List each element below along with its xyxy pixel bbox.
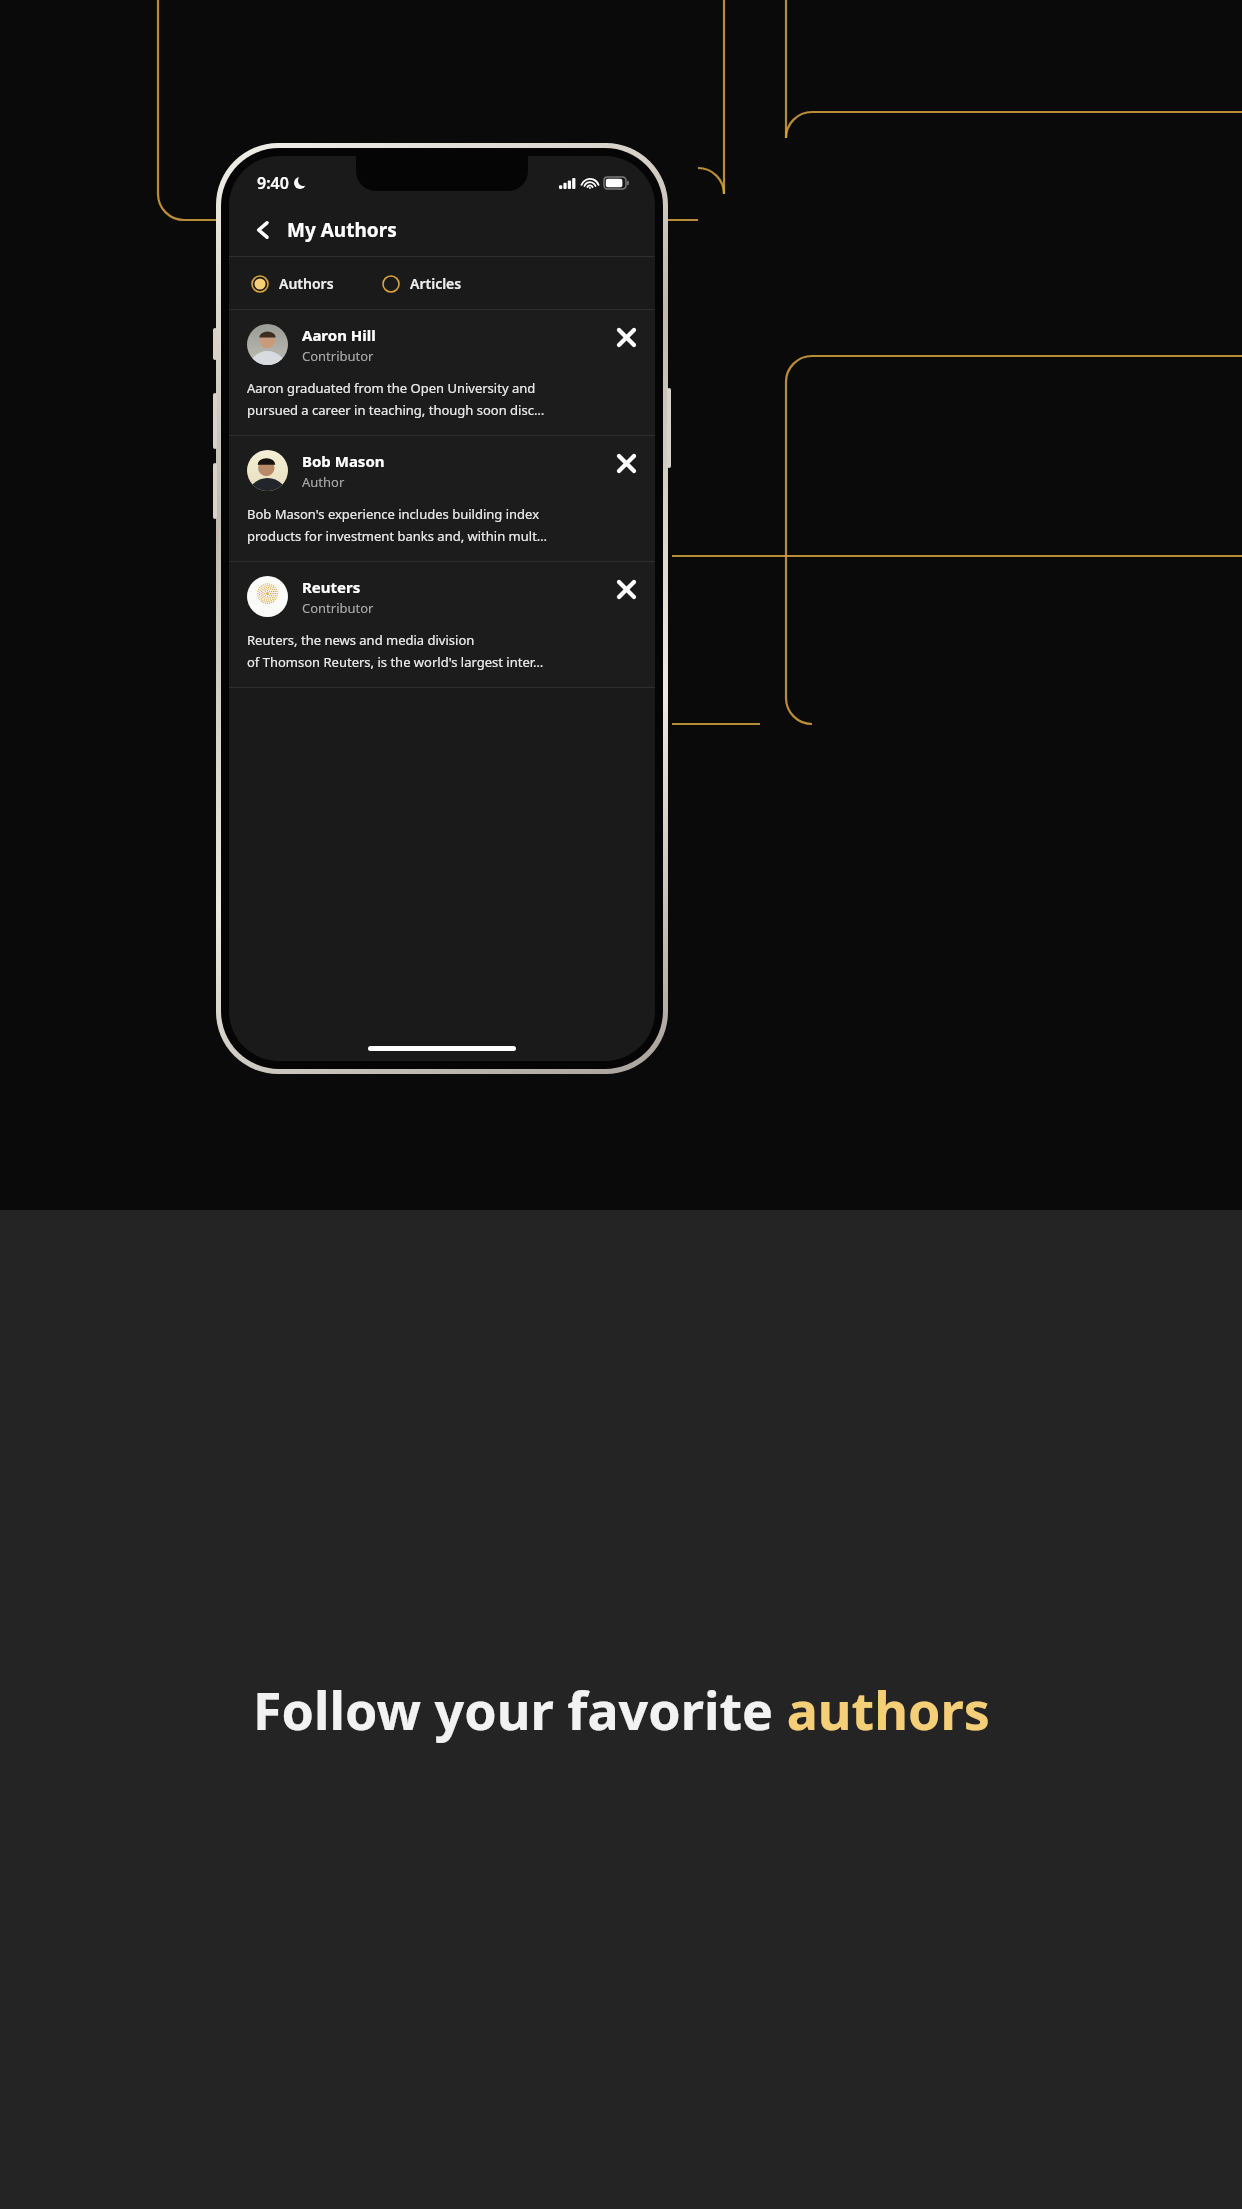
staticText: Aaron graduated from the Open University…: [247, 379, 536, 397]
staticText: Bob Mason: [302, 451, 385, 471]
staticText: pursued a career in teaching, though soo…: [247, 401, 545, 419]
staticText: My Authors: [287, 217, 397, 243]
button[interactable]: Authors: [249, 266, 336, 301]
staticText: Follow your favorite authors: [253, 1674, 990, 1745]
staticText: Contributor: [302, 347, 374, 365]
staticText: Contributor: [302, 599, 374, 617]
button[interactable]: Articles: [380, 266, 464, 301]
staticText: Reuters, the news and media division: [247, 631, 475, 649]
staticText: Authors: [279, 274, 334, 293]
staticText: Articles: [410, 274, 462, 293]
button[interactable]: Bob Mason: [229, 436, 655, 561]
staticText: of Thomson Reuters, is the world's large…: [247, 653, 544, 671]
staticText: Reuters: [302, 577, 361, 597]
staticText: Bob Mason's experience includes building…: [247, 505, 540, 523]
button[interactable]: Remove Reuters: [607, 570, 645, 608]
button[interactable]: Remove Bob Mason: [607, 444, 645, 482]
staticText: Aaron Hill: [302, 325, 376, 345]
staticText: Author: [302, 473, 345, 491]
button[interactable]: Aaron Hill: [229, 310, 655, 435]
button[interactable]: Remove Aaron Hill: [607, 318, 645, 356]
staticText: 9:40: [257, 172, 289, 194]
staticText: products for investment banks and, withi…: [247, 527, 548, 545]
button[interactable]: Reuters: [229, 562, 655, 687]
button[interactable]: Back: [243, 210, 283, 250]
